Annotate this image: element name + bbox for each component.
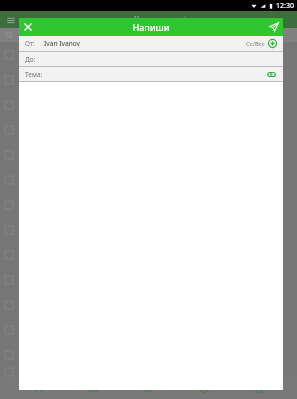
staticText: Ivan Ivanov [44, 39, 80, 48]
button[interactable]: Close [19, 18, 37, 36]
staticText: Кутия [134, 14, 157, 25]
staticText: От: [25, 39, 35, 48]
button[interactable]: От: [25, 36, 277, 51]
staticText: Напиши [132, 21, 170, 33]
button[interactable]: Send [265, 18, 283, 36]
staticText: До: [25, 55, 36, 64]
button[interactable]: Reply [21, 377, 55, 399]
button[interactable]: До: [25, 52, 277, 66]
staticText: Сс/Всс [246, 40, 265, 48]
button[interactable]: Spam [187, 377, 221, 399]
button[interactable]: Move [132, 377, 166, 399]
staticText: Тема: [25, 70, 43, 79]
button[interactable]: Delete [242, 377, 276, 399]
staticText: 12:30 [276, 1, 294, 11]
button[interactable]: Mark as read [76, 377, 110, 399]
button[interactable]: Тема: [25, 67, 277, 81]
button[interactable]: Сс/Всс [246, 39, 277, 48]
button[interactable]: Attach [265, 68, 277, 80]
